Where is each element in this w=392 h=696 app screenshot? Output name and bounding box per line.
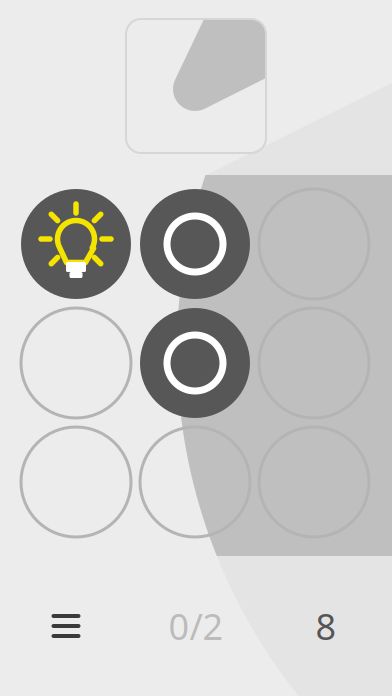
button[interactable]: Menu <box>1 591 131 661</box>
staticText: 0/2 <box>168 602 223 650</box>
staticText: 8 <box>315 602 336 650</box>
